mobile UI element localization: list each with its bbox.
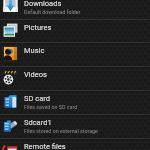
button[interactable]: Sdcard1 <box>0 114 150 138</box>
button[interactable]: Downloads <box>0 0 150 19</box>
button[interactable]: Remote files <box>0 138 150 150</box>
staticText: Downloads <box>24 0 62 8</box>
button[interactable]: Music <box>0 42 150 66</box>
staticText: Remote files <box>24 142 66 150</box>
button[interactable]: Pictures <box>0 19 150 43</box>
staticText: SD card <box>24 94 50 103</box>
staticText: Default download folder <box>24 9 81 15</box>
staticText: Files saved on SD card <box>24 104 78 110</box>
staticText: Music <box>24 46 45 55</box>
staticText: Files stored on external storage <box>24 128 98 134</box>
staticText: Videos <box>24 70 47 79</box>
button[interactable]: SD card <box>0 90 150 114</box>
staticText: Pictures <box>24 23 52 32</box>
staticText: Sdcard1 <box>24 118 52 127</box>
button[interactable]: Videos <box>0 66 150 90</box>
